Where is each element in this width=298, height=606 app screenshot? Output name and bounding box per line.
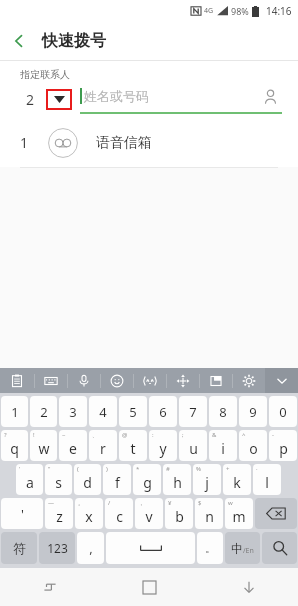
staticText: v: [145, 507, 153, 526]
staticText: /: [108, 499, 111, 507]
button[interactable]: ': [1, 498, 43, 529]
staticText: -: [272, 431, 274, 439]
button[interactable]: ，: [135, 498, 163, 529]
button[interactable]: +: [223, 464, 251, 495]
button[interactable]: Select speed dial number: [46, 89, 72, 110]
button[interactable]: 、: [89, 430, 117, 461]
button[interactable]: 1: [1, 396, 28, 427]
button[interactable]: Home: [100, 568, 199, 606]
button[interactable]: —: [45, 498, 73, 529]
staticText: q: [10, 439, 19, 458]
staticText: %: [196, 465, 201, 473]
button[interactable]: ;: [179, 430, 207, 461]
staticText: ，: [138, 499, 144, 507]
button[interactable]: 。: [75, 498, 103, 529]
button[interactable]: 。: [197, 532, 223, 564]
button[interactable]: 3: [59, 396, 87, 427]
staticText: c: [116, 507, 123, 526]
button[interactable]: $: [195, 498, 223, 529]
button[interactable]: !: [30, 430, 57, 461]
button[interactable]: Recents: [0, 568, 100, 606]
button[interactable]: ~: [59, 430, 87, 461]
staticText: ;: [182, 431, 184, 439]
button[interactable]: ,: [77, 532, 104, 564]
staticText: 8: [219, 403, 227, 421]
staticText: t: [130, 439, 136, 458]
button[interactable]: Settings: [232, 368, 265, 393]
button[interactable]: -: [269, 430, 297, 461]
staticText: 7: [189, 403, 197, 421]
button[interactable]: 0: [269, 396, 297, 427]
staticText: $: [198, 499, 202, 507]
button[interactable]: 8: [209, 396, 237, 427]
staticText: b: [175, 507, 184, 526]
button[interactable]: Keyboard layout: [34, 368, 67, 393]
button[interactable]: Emoticons: [133, 368, 166, 393]
staticText: 语音信箱: [96, 134, 152, 152]
button[interactable]: ': [16, 464, 43, 495]
button[interactable]: /: [105, 498, 133, 529]
staticText: p: [279, 439, 288, 458]
staticText: 2: [26, 90, 35, 109]
button[interactable]: ¥: [165, 498, 193, 529]
staticText: i: [221, 439, 225, 458]
button[interactable]: ^: [239, 430, 267, 461]
button[interactable]: Hide keyboard: [199, 568, 298, 606]
staticText: +: [226, 465, 230, 473]
staticText: :: [152, 431, 154, 439]
staticText: g: [143, 473, 152, 492]
button[interactable]: &: [209, 430, 237, 461]
staticText: 2: [40, 403, 48, 421]
button[interactable]: 6: [149, 396, 177, 427]
button[interactable]: Emoji: [100, 368, 133, 393]
button[interactable]: 9: [239, 396, 267, 427]
staticText: 5: [129, 403, 137, 421]
button[interactable]: ": [45, 464, 72, 495]
staticText: /En: [243, 546, 254, 556]
button[interactable]: @: [119, 430, 147, 461]
staticText: ^: [242, 431, 246, 439]
button[interactable]: 1: [0, 118, 298, 167]
staticText: 4: [99, 403, 107, 421]
button[interactable]: 5: [119, 396, 147, 427]
button[interactable]: 123: [39, 532, 75, 564]
button[interactable]: ·: [253, 464, 281, 495]
staticText: 14:16: [266, 4, 292, 18]
staticText: ,: [89, 539, 93, 557]
button[interactable]: Back: [0, 22, 38, 60]
staticText: e: [69, 439, 77, 458]
staticText: ?: [4, 431, 7, 439]
button[interactable]: #: [163, 464, 191, 495]
button[interactable]: Backspace: [255, 498, 297, 529]
staticText: #: [166, 465, 170, 473]
button[interactable]: Hide keyboard: [265, 368, 298, 393]
button[interactable]: Space: [106, 532, 195, 564]
button[interactable]: Search: [262, 532, 297, 564]
staticText: u: [189, 439, 198, 458]
staticText: w: [38, 439, 50, 458]
button[interactable]: (: [74, 464, 101, 495]
button[interactable]: Voice input: [67, 368, 100, 393]
staticText: !: [33, 431, 35, 439]
button[interactable]: Split keyboard: [199, 368, 232, 393]
button[interactable]: *: [133, 464, 161, 495]
staticText: z: [56, 507, 63, 526]
staticText: 123: [47, 540, 68, 556]
button[interactable]: 4: [89, 396, 117, 427]
button[interactable]: w: [225, 498, 253, 529]
staticText: 快速拨号: [42, 31, 106, 51]
button[interactable]: Clipboard: [0, 368, 34, 393]
button[interactable]: 符: [1, 532, 37, 564]
button[interactable]: Move keyboard: [166, 368, 199, 393]
button[interactable]: 2: [30, 396, 57, 427]
staticText: n: [205, 507, 214, 526]
button[interactable]: ): [103, 464, 131, 495]
staticText: 姓名或号码: [84, 88, 149, 104]
button[interactable]: Open contacts: [258, 84, 282, 108]
staticText: ~: [62, 431, 66, 439]
button[interactable]: ?: [1, 430, 28, 461]
button[interactable]: 中: [225, 532, 260, 564]
button[interactable]: %: [193, 464, 221, 495]
button[interactable]: :: [149, 430, 177, 461]
button[interactable]: 7: [179, 396, 207, 427]
